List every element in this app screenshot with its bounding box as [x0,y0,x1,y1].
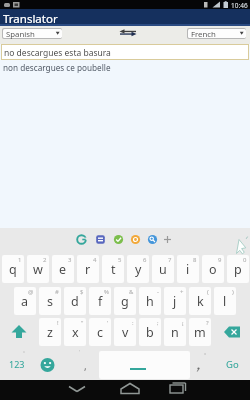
button[interactable]: ° [191,350,213,378]
staticText: ? [206,319,209,327]
button[interactable]: e [52,255,74,283]
staticText: x [72,324,79,341]
button[interactable]: , [60,350,98,378]
staticText: o [209,261,217,278]
button[interactable]: p [227,255,249,283]
staticText: non descargues ce poubelle [3,62,111,73]
button[interactable] [111,233,124,246]
button[interactable]: l [214,287,236,315]
button[interactable]: h [139,287,161,315]
button[interactable]: x [64,318,86,346]
staticText: - [157,288,159,296]
button[interactable]: French [187,28,246,39]
staticText: ° [204,352,207,359]
staticText: k [197,293,204,310]
staticText: j [173,293,177,310]
button[interactable] [2,318,36,346]
staticText: : [132,319,134,327]
staticText: ' [107,319,109,327]
button[interactable]: no descargues esta basura [1,44,249,60]
button[interactable] [162,380,192,400]
button[interactable]: w [27,255,49,283]
staticText: s [47,293,53,310]
button[interactable]: s [39,287,61,315]
staticText: @ [28,288,34,296]
staticText: , [84,359,87,373]
button[interactable]: o [202,255,224,283]
staticText: 3 [68,256,72,264]
button[interactable] [161,233,174,246]
staticText: 9 [218,256,222,264]
staticText: 4 [93,256,97,264]
staticText: p [234,261,242,278]
staticText: 10:46 [231,1,248,10]
staticText: f [98,293,103,310]
staticText: ) [232,288,234,296]
staticText: r [85,261,91,278]
staticText: 8 [193,256,197,264]
staticText: # [55,288,59,296]
button[interactable]: f [89,287,111,315]
button[interactable] [93,233,106,246]
button[interactable] [128,233,141,246]
button[interactable]: a [14,287,36,315]
button[interactable]: 123 [2,350,32,378]
button[interactable]: i [177,255,199,283]
button[interactable]: Go [215,350,248,378]
button[interactable] [145,233,158,246]
button[interactable]: q [2,255,24,283]
staticText: French [191,29,216,39]
button[interactable] [99,351,190,379]
staticText: ' [79,349,81,356]
staticText: Spanish [6,29,35,39]
staticText: 2 [43,256,47,264]
staticText: 6 [143,256,147,264]
staticText: ° [23,350,25,356]
staticText: 1 [18,256,22,264]
button[interactable] [215,318,249,346]
button[interactable]: y [127,255,149,283]
button[interactable]: b [139,318,161,346]
staticText: ( [207,288,209,296]
button[interactable]: z [39,318,61,346]
button[interactable] [62,380,92,400]
button[interactable] [115,380,145,400]
button[interactable] [75,233,88,246]
button[interactable]: t [102,255,124,283]
staticText: 0 [243,256,247,264]
staticText: c [97,324,104,341]
button[interactable]: n [164,318,186,346]
staticText: Translator [3,11,58,27]
staticText: ; [157,319,159,327]
staticText: w [33,261,43,278]
button[interactable]: j [164,287,186,315]
staticText: + [180,288,184,296]
button[interactable]: g [114,287,136,315]
button[interactable]: v [114,318,136,346]
button[interactable]: u [152,255,174,283]
staticText: e [59,261,67,278]
button[interactable]: c [89,318,111,346]
button[interactable]: k [189,287,211,315]
button[interactable]: r [77,255,99,283]
button[interactable]: m [189,318,211,346]
button[interactable]: Translator [0,9,250,26]
staticText: 5 [118,256,122,264]
staticText: g [121,293,129,310]
button[interactable]: Spanish [2,28,62,39]
staticText: l [223,293,227,310]
staticText: Go [226,358,239,371]
button[interactable] [114,28,142,39]
button[interactable]: d [64,287,86,315]
staticText: ¡ [182,319,184,327]
staticText: d [71,293,79,310]
staticText: 7 [168,256,172,264]
staticText: i [186,261,190,278]
staticText: " [81,319,84,327]
staticText: no descargues esta basura [4,47,111,59]
staticText: u [159,261,167,278]
button[interactable] [38,355,58,375]
staticText: % [104,288,109,296]
staticText: t [111,261,116,278]
staticText: 123 [9,358,25,370]
